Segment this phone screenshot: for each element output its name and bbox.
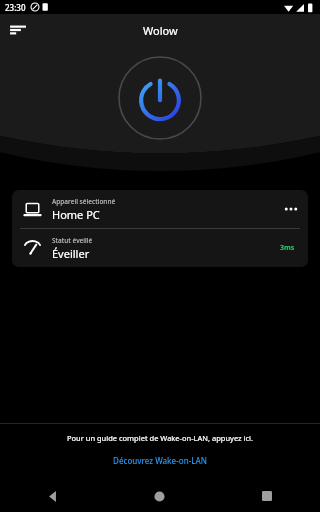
staticText: Éveiller (52, 246, 90, 261)
button[interactable]: Appareil sélectionné (12, 190, 308, 228)
button[interactable]: More options (274, 192, 308, 226)
staticText: 23:30 (5, 2, 26, 13)
staticText: Découvrez Wake-on-LAN (113, 455, 207, 466)
button[interactable]: Home (106, 480, 213, 512)
staticText: Home PC (52, 207, 100, 222)
button[interactable]: Statut éveillé (12, 229, 308, 267)
button[interactable]: Back (0, 480, 106, 512)
button[interactable]: Découvrez Wake-on-LAN (107, 453, 213, 468)
staticText: Appareil sélectionné (52, 197, 116, 206)
button[interactable]: Menu (4, 16, 32, 44)
button[interactable]: Recent apps (213, 480, 320, 512)
staticText: Statut éveillé (52, 236, 93, 245)
staticText: Pour un guide complet de Wake-on-LAN, ap… (0, 433, 320, 443)
staticText: Wolow (143, 23, 178, 38)
button[interactable]: Power (118, 56, 202, 140)
staticText: 3ms (280, 243, 295, 253)
